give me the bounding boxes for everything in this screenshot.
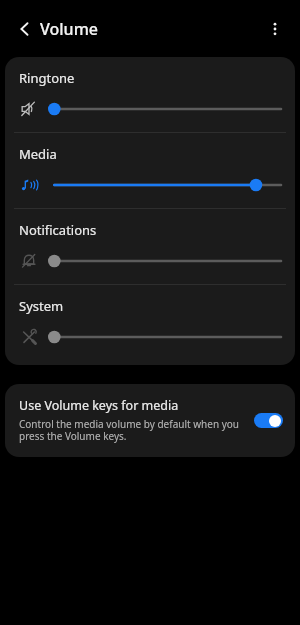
staticText: Control the media volume by default when…	[19, 417, 246, 443]
staticText: Use Volume keys for media	[19, 397, 179, 414]
staticText: Volume	[40, 18, 98, 40]
button[interactable]	[5, 172, 295, 198]
button[interactable]: More options	[258, 12, 292, 46]
staticText: Ringtone	[19, 69, 75, 87]
button[interactable]: Back	[8, 12, 42, 46]
button[interactable]	[5, 96, 295, 122]
button[interactable]	[5, 248, 295, 274]
staticText: Notifications	[19, 221, 97, 239]
button[interactable]	[5, 324, 295, 350]
button[interactable]: Use Volume keys for media toggle	[254, 413, 283, 428]
button[interactable]: Use Volume keys for media	[5, 384, 295, 457]
staticText: Media	[19, 145, 57, 163]
staticText: System	[19, 297, 64, 315]
